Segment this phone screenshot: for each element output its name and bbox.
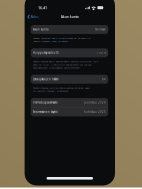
staticText: 100 % [97, 51, 106, 55]
staticText: Tietoja: Akku ja lataus [42, 39, 68, 43]
staticText: käyttökertojen lukumäärän vähenemiseen. [33, 66, 81, 69]
staticText: 16.41 [38, 5, 47, 10]
button[interactable]: Latausjaksojen määrä [31, 75, 108, 84]
staticText: 84 [102, 77, 106, 81]
staticText: joulukuu 2024 [84, 101, 106, 104]
staticText: Lisätietoja [57, 89, 68, 93]
staticText: Akku [30, 15, 38, 19]
staticText: Akun kunto [61, 14, 79, 19]
button[interactable]: Huippukapasiteetti [31, 48, 108, 57]
staticText: on ladattu täyteen. [33, 89, 57, 93]
staticText: huhtikuu 2025 [84, 110, 106, 114]
staticText: Huippukapasiteetti [33, 51, 59, 55]
button[interactable]: Ensimmäinen käyttö [31, 107, 108, 116]
button[interactable]: Valmistuspäivämäärä [31, 98, 108, 107]
staticText: Tämän iPhonen akun suorituskyky on odote… [33, 36, 90, 40]
staticText: Ensimmäinen käyttö [33, 110, 58, 114]
staticText: tasolla. [33, 39, 42, 43]
staticText: Valmistuspäivämäärä [33, 101, 57, 104]
staticText: Tämä ilmaisee akun kapasiteetin verrattu… [33, 60, 99, 63]
staticText: Tämä ilmaisee, kuinka monta kertaa iPhon… [33, 86, 90, 89]
staticText: Latausjaksojen määrä [33, 77, 58, 81]
staticText: Normaali [95, 28, 106, 31]
button[interactable]: Akun kunto [31, 25, 108, 34]
button[interactable]: Akku [25, 14, 38, 20]
staticText: Akun kunto [33, 28, 49, 31]
staticText: akku oli uusi. Alentunut kapasiteetti vo… [33, 63, 91, 66]
